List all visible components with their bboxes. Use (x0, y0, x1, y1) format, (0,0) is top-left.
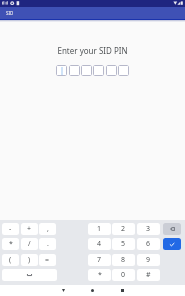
button[interactable]: 3 (137, 223, 160, 235)
staticText: + (27, 224, 32, 234)
staticText: 9 (146, 255, 151, 265)
staticText: 3 (146, 224, 151, 234)
button[interactable] (69, 65, 80, 76)
staticText: = (45, 255, 50, 265)
button[interactable]: , (39, 223, 56, 235)
button[interactable]: 4 (88, 238, 111, 250)
button[interactable]: - (2, 223, 19, 235)
button[interactable]: + (21, 223, 38, 235)
staticText: Enter your SID PIN (0, 45, 185, 56)
staticText: , (47, 224, 49, 234)
button[interactable]: Back (55, 285, 71, 296)
button[interactable] (106, 65, 117, 76)
button[interactable]: 2 (112, 223, 135, 235)
button[interactable] (56, 65, 67, 76)
button[interactable] (2, 269, 57, 281)
button[interactable]: Recents (114, 285, 130, 296)
staticText: SID (6, 10, 14, 16)
button[interactable]: Backspace (163, 223, 181, 235)
button[interactable] (118, 65, 129, 76)
staticText: * (9, 239, 13, 249)
staticText: # (146, 270, 151, 280)
button[interactable]: 1 (88, 223, 111, 235)
button[interactable]: 8 (112, 254, 135, 266)
button[interactable]: * (2, 238, 19, 250)
staticText: 4 (97, 239, 102, 249)
staticText: ) (28, 255, 31, 265)
button[interactable]: = (39, 254, 56, 266)
button[interactable]: ) (21, 254, 38, 266)
staticText: 7 (97, 255, 102, 265)
button[interactable] (93, 65, 104, 76)
button[interactable]: . (39, 238, 56, 250)
staticText: 0 (121, 270, 126, 280)
staticText: - (9, 224, 12, 234)
button[interactable]: 9 (137, 254, 160, 266)
staticText: / (28, 239, 31, 249)
button[interactable]: / (21, 238, 38, 250)
button[interactable]: * (88, 269, 111, 281)
button[interactable]: Home (84, 285, 100, 296)
button[interactable]: # (137, 269, 160, 281)
button[interactable]: 0 (112, 269, 135, 281)
button[interactable] (81, 65, 92, 76)
staticText: 8 (121, 255, 126, 265)
staticText: 5 (121, 239, 126, 249)
button[interactable]: Enter (163, 238, 181, 250)
button[interactable]: 7 (88, 254, 111, 266)
button[interactable]: 6 (137, 238, 160, 250)
staticText: 1 (97, 224, 102, 234)
staticText: * (98, 270, 102, 280)
button[interactable]: ( (2, 254, 19, 266)
staticText: . (47, 239, 49, 249)
staticText: 2 (121, 224, 126, 234)
staticText: 6 (146, 239, 151, 249)
button[interactable]: 5 (112, 238, 135, 250)
staticText: ( (9, 255, 12, 265)
